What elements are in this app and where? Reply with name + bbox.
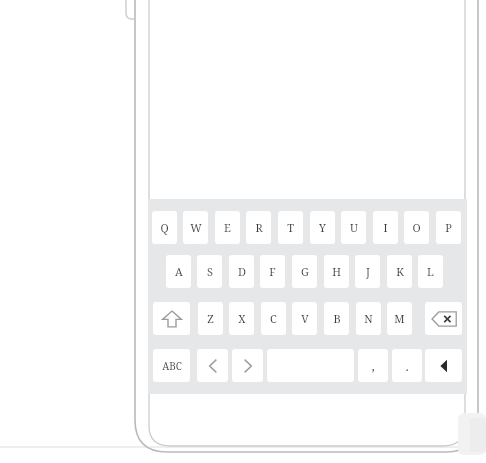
button[interactable]: A [166, 255, 191, 288]
staticText: S [207, 264, 213, 279]
button[interactable]: O [404, 211, 429, 244]
button[interactable]: N [356, 302, 381, 335]
staticText: , [371, 357, 375, 375]
staticText: A [175, 264, 183, 279]
button[interactable]: K [387, 255, 412, 288]
staticText: L [427, 264, 434, 279]
staticText: F [269, 264, 276, 279]
button[interactable]: U [341, 211, 366, 244]
staticText: D [238, 264, 246, 279]
staticText: K [396, 264, 404, 279]
button[interactable]: Shift [153, 302, 190, 335]
staticText: Z [207, 311, 214, 326]
staticText: I [383, 220, 388, 235]
staticText: O [412, 220, 421, 235]
button[interactable]: . [392, 349, 422, 382]
button[interactable]: W [183, 211, 208, 244]
staticText: ABC [162, 359, 182, 373]
staticText: C [270, 311, 277, 326]
staticText: E [224, 220, 231, 235]
button[interactable]: Previous [197, 349, 228, 382]
button[interactable]: Backspace [425, 302, 462, 335]
button[interactable]: H [324, 255, 349, 288]
staticText: Q [160, 220, 169, 235]
button[interactable]: S [197, 255, 222, 288]
staticText: M [394, 311, 405, 326]
button[interactable]: I [373, 211, 398, 244]
button[interactable]: Z [198, 302, 223, 335]
button[interactable]: E [215, 211, 240, 244]
button[interactable]: L [418, 255, 443, 288]
button[interactable]: , [358, 349, 388, 382]
button[interactable]: V [292, 302, 317, 335]
button[interactable]: D [229, 255, 254, 288]
button[interactable]: F [260, 255, 285, 288]
staticText: G [301, 264, 309, 279]
button[interactable]: Next [232, 349, 263, 382]
staticText: V [301, 311, 309, 326]
staticText: T [287, 220, 294, 235]
button[interactable]: J [355, 255, 380, 288]
button[interactable]: P [436, 211, 461, 244]
staticText: P [445, 220, 452, 235]
button[interactable]: T [278, 211, 303, 244]
button[interactable]: Enter [425, 349, 462, 382]
staticText: U [350, 220, 358, 235]
staticText: . [405, 357, 409, 375]
button[interactable]: M [387, 302, 412, 335]
staticText: R [255, 220, 263, 235]
staticText: Y [319, 220, 326, 235]
button[interactable]: R [246, 211, 271, 244]
staticText: N [364, 311, 373, 326]
button[interactable]: Y [310, 211, 335, 244]
staticText: H [332, 264, 341, 279]
staticText: J [366, 264, 370, 279]
staticText: W [190, 220, 202, 235]
button[interactable]: Q [152, 211, 177, 244]
button[interactable]: ABC [153, 349, 190, 382]
button[interactable]: B [324, 302, 349, 335]
button[interactable]: C [261, 302, 286, 335]
staticText: X [238, 311, 246, 326]
button[interactable]: G [292, 255, 317, 288]
button[interactable]: X [229, 302, 254, 335]
staticText: B [333, 311, 341, 326]
